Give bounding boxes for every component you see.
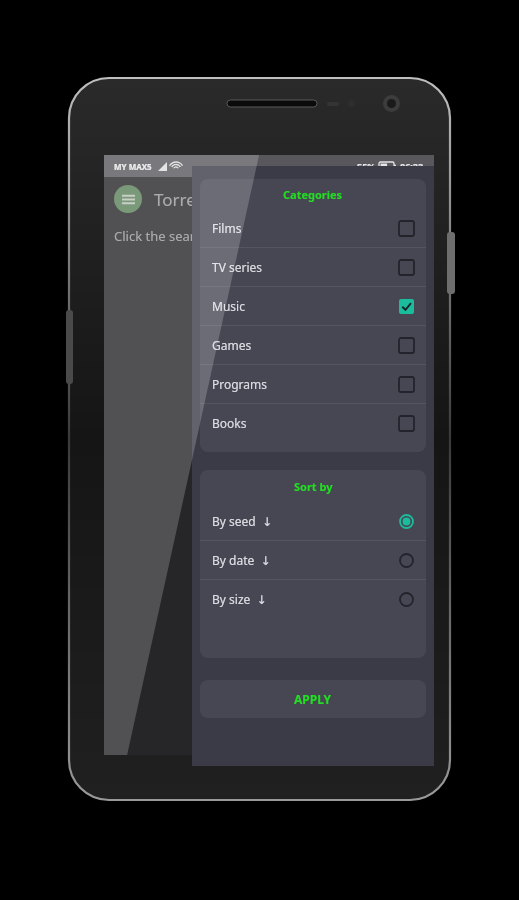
button[interactable]: By seed ↓ bbox=[200, 502, 426, 540]
button[interactable]: TV series bbox=[200, 248, 426, 286]
staticText: 06:22 bbox=[400, 160, 424, 172]
staticText: TV series bbox=[212, 259, 263, 275]
staticText: Music bbox=[212, 298, 245, 314]
staticText: Books bbox=[212, 415, 247, 431]
button[interactable]: Games bbox=[200, 326, 426, 364]
staticText: By seed ↓ bbox=[212, 513, 272, 529]
button[interactable]: Films bbox=[200, 209, 426, 247]
staticText: By date ↓ bbox=[212, 552, 271, 568]
staticText: Torrent bbox=[154, 188, 213, 211]
staticText: 55% bbox=[357, 160, 376, 172]
button[interactable]: Menu bbox=[114, 185, 142, 213]
staticText: Click the search icon bbox=[114, 227, 239, 245]
button[interactable]: By size ↓ bbox=[200, 580, 426, 618]
staticText: Programs bbox=[212, 376, 268, 392]
staticText: Games bbox=[212, 337, 252, 353]
staticText: Films bbox=[212, 220, 242, 236]
staticText: MY MAX5 bbox=[114, 161, 152, 172]
button[interactable]: Books bbox=[200, 404, 426, 442]
button[interactable]: APPLY bbox=[200, 680, 426, 718]
button[interactable]: Programs bbox=[200, 365, 426, 403]
button[interactable]: By date ↓ bbox=[200, 541, 426, 579]
staticText: Sort by bbox=[294, 479, 333, 494]
staticText: Categories bbox=[283, 187, 343, 202]
button[interactable]: Music bbox=[200, 287, 426, 325]
staticText: APPLY bbox=[294, 691, 332, 707]
staticText: By size ↓ bbox=[212, 591, 267, 607]
